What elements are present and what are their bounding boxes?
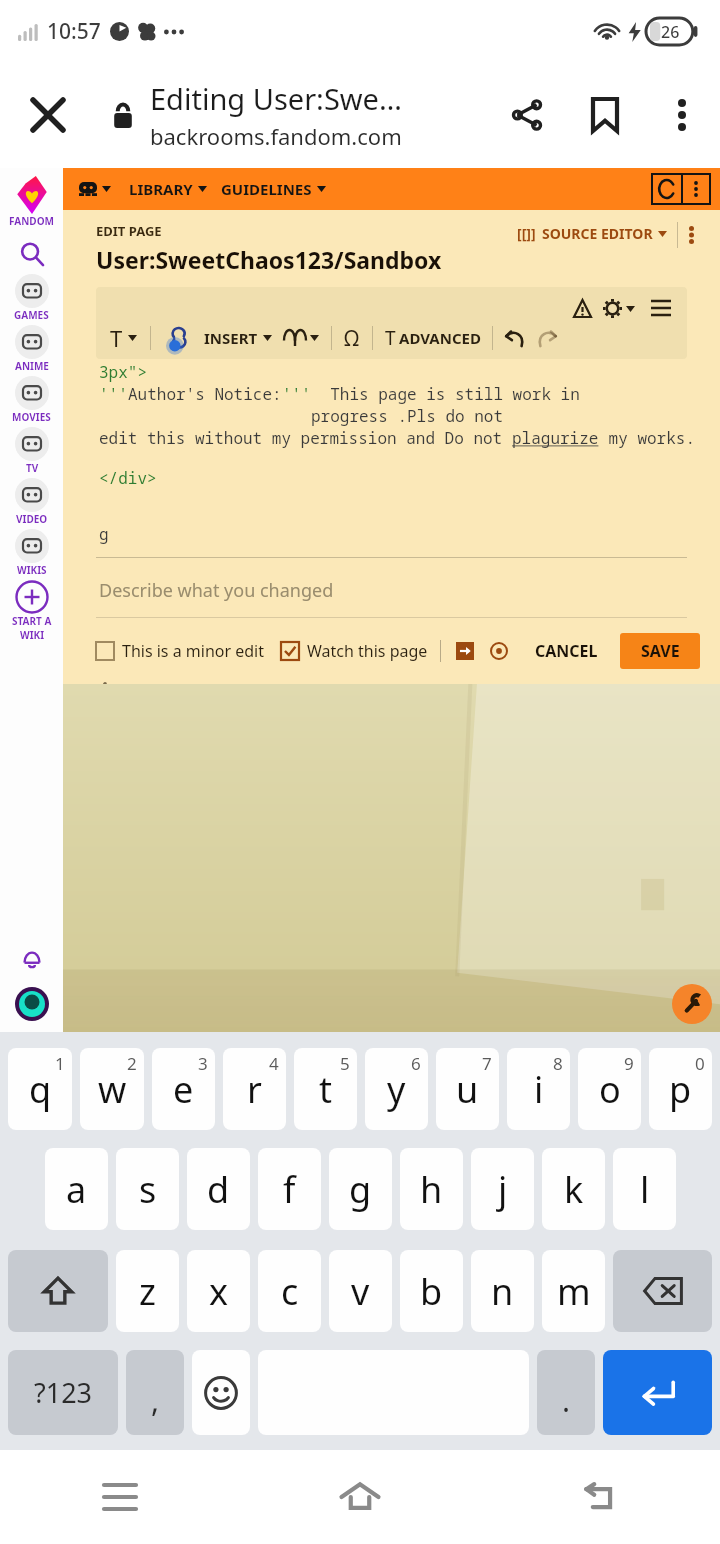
- staticText: .: [562, 1380, 571, 1421]
- staticText: VIDEO: [16, 512, 48, 526]
- staticText: This page is still work in progress .Pls…: [311, 383, 700, 427]
- button[interactable]: n: [471, 1250, 534, 1332]
- button[interactable]: Redo: [534, 325, 560, 351]
- button[interactable]: ANIME: [15, 325, 49, 373]
- staticText: ''': [99, 383, 128, 405]
- button[interactable]: VIDEO: [15, 478, 49, 526]
- button[interactable]: Undo: [502, 325, 528, 351]
- button[interactable]: v: [329, 1250, 392, 1332]
- button[interactable]: a: [45, 1148, 108, 1230]
- button[interactable]: LIBRARY: [129, 175, 207, 203]
- staticText: GUIDELINES: [221, 179, 312, 199]
- button[interactable]: s: [116, 1148, 179, 1230]
- button[interactable]: Editor options: [678, 222, 704, 248]
- button[interactable]: j: [471, 1148, 534, 1230]
- button[interactable]: e: [152, 1048, 215, 1130]
- staticText: WIKIS: [17, 563, 47, 577]
- button[interactable]: Fandom: [16, 176, 48, 214]
- button[interactable]: t: [294, 1048, 357, 1130]
- button[interactable]: y: [365, 1048, 428, 1130]
- button[interactable]: T: [385, 325, 481, 351]
- staticText: ?123: [34, 1374, 93, 1411]
- button[interactable]: START A: [12, 580, 52, 642]
- button[interactable]: Notifications: [11, 940, 53, 982]
- staticText: g: [99, 523, 109, 545]
- button[interactable]: .: [537, 1350, 595, 1435]
- button[interactable]: Share: [488, 76, 566, 154]
- button[interactable]: Special characters: [344, 324, 360, 353]
- button[interactable]: Editing User:Swe…: [150, 79, 488, 151]
- button[interactable]: Preview: [487, 639, 511, 663]
- button[interactable]: u: [436, 1048, 499, 1130]
- button[interactable]: MOVIES: [12, 376, 51, 424]
- button[interactable]: CANCEL: [525, 632, 608, 670]
- button[interactable]: Symbols: [8, 1350, 118, 1435]
- button[interactable]: Search: [12, 234, 52, 274]
- button[interactable]: Wiki more options: [682, 174, 710, 204]
- button[interactable]: l: [613, 1148, 676, 1230]
- button[interactable]: z: [116, 1250, 179, 1332]
- button[interactable]: Menu: [647, 294, 675, 322]
- button[interactable]: d: [187, 1148, 250, 1230]
- button[interactable]: GAMES: [14, 274, 49, 322]
- button[interactable]: Wiki menu: [75, 178, 115, 200]
- button[interactable]: Emoji: [192, 1350, 250, 1435]
- staticText: T: [110, 323, 123, 353]
- button[interactable]: This is a minor edit: [96, 640, 265, 662]
- button[interactable]: WIKIS: [15, 529, 49, 577]
- staticText: p: [669, 1065, 692, 1114]
- button[interactable]: INSERT: [204, 328, 272, 348]
- button[interactable]: h: [400, 1148, 463, 1230]
- staticText: WIKI: [20, 628, 45, 642]
- button[interactable]: Recents: [0, 1450, 240, 1544]
- button[interactable]: k: [542, 1148, 605, 1230]
- button[interactable]: Dark mode: [652, 174, 682, 204]
- button[interactable]: ,: [126, 1350, 184, 1435]
- button[interactable]: m: [542, 1250, 605, 1332]
- button[interactable]: o: [578, 1048, 641, 1130]
- button[interactable]: Site information: [96, 102, 150, 128]
- button[interactable]: x: [187, 1250, 250, 1332]
- button[interactable]: Warnings: [567, 293, 597, 323]
- button[interactable]: Bookmark: [566, 76, 644, 154]
- button[interactable]: p: [649, 1048, 712, 1130]
- button[interactable]: Shift: [8, 1250, 108, 1332]
- button[interactable]: Link: [164, 323, 194, 353]
- button[interactable]: i: [507, 1048, 570, 1130]
- button[interactable]: SAVE: [620, 633, 700, 669]
- staticText: y: [387, 1065, 406, 1114]
- button[interactable]: Backspace: [613, 1250, 712, 1332]
- button[interactable]: g: [329, 1148, 392, 1230]
- button[interactable]: [284, 330, 319, 346]
- staticText: Describe what you changed: [99, 578, 334, 603]
- button[interactable]: More options: [644, 77, 720, 153]
- staticText: ''': [282, 383, 311, 405]
- button[interactable]: Home: [240, 1450, 480, 1544]
- staticText: 4: [269, 1052, 279, 1075]
- staticText: Author's Notice:: [128, 383, 282, 405]
- button[interactable]: [[]]: [517, 224, 667, 243]
- button[interactable]: b: [400, 1250, 463, 1332]
- staticText: 8: [553, 1052, 563, 1075]
- button[interactable]: Enter: [603, 1350, 712, 1435]
- button[interactable]: T: [110, 323, 137, 353]
- button[interactable]: w: [80, 1048, 144, 1130]
- button[interactable]: [603, 299, 635, 318]
- button[interactable]: Back: [480, 1450, 720, 1544]
- staticText: b: [420, 1267, 443, 1316]
- button[interactable]: q: [8, 1048, 72, 1130]
- button[interactable]: Close: [0, 67, 96, 163]
- button[interactable]: GUIDELINES: [221, 175, 326, 203]
- staticText: h: [420, 1165, 443, 1214]
- button[interactable]: c: [258, 1250, 321, 1332]
- button[interactable]: Insert: [453, 639, 477, 663]
- staticText: my works.: [599, 427, 696, 449]
- button[interactable]: Watch this page: [281, 640, 428, 662]
- button[interactable]: f: [258, 1148, 321, 1230]
- button[interactable]: Tools: [672, 984, 712, 1024]
- button[interactable]: TV: [15, 427, 49, 475]
- button[interactable]: r: [223, 1048, 286, 1130]
- staticText: 5: [340, 1052, 350, 1075]
- button[interactable]: Account: [10, 982, 54, 1026]
